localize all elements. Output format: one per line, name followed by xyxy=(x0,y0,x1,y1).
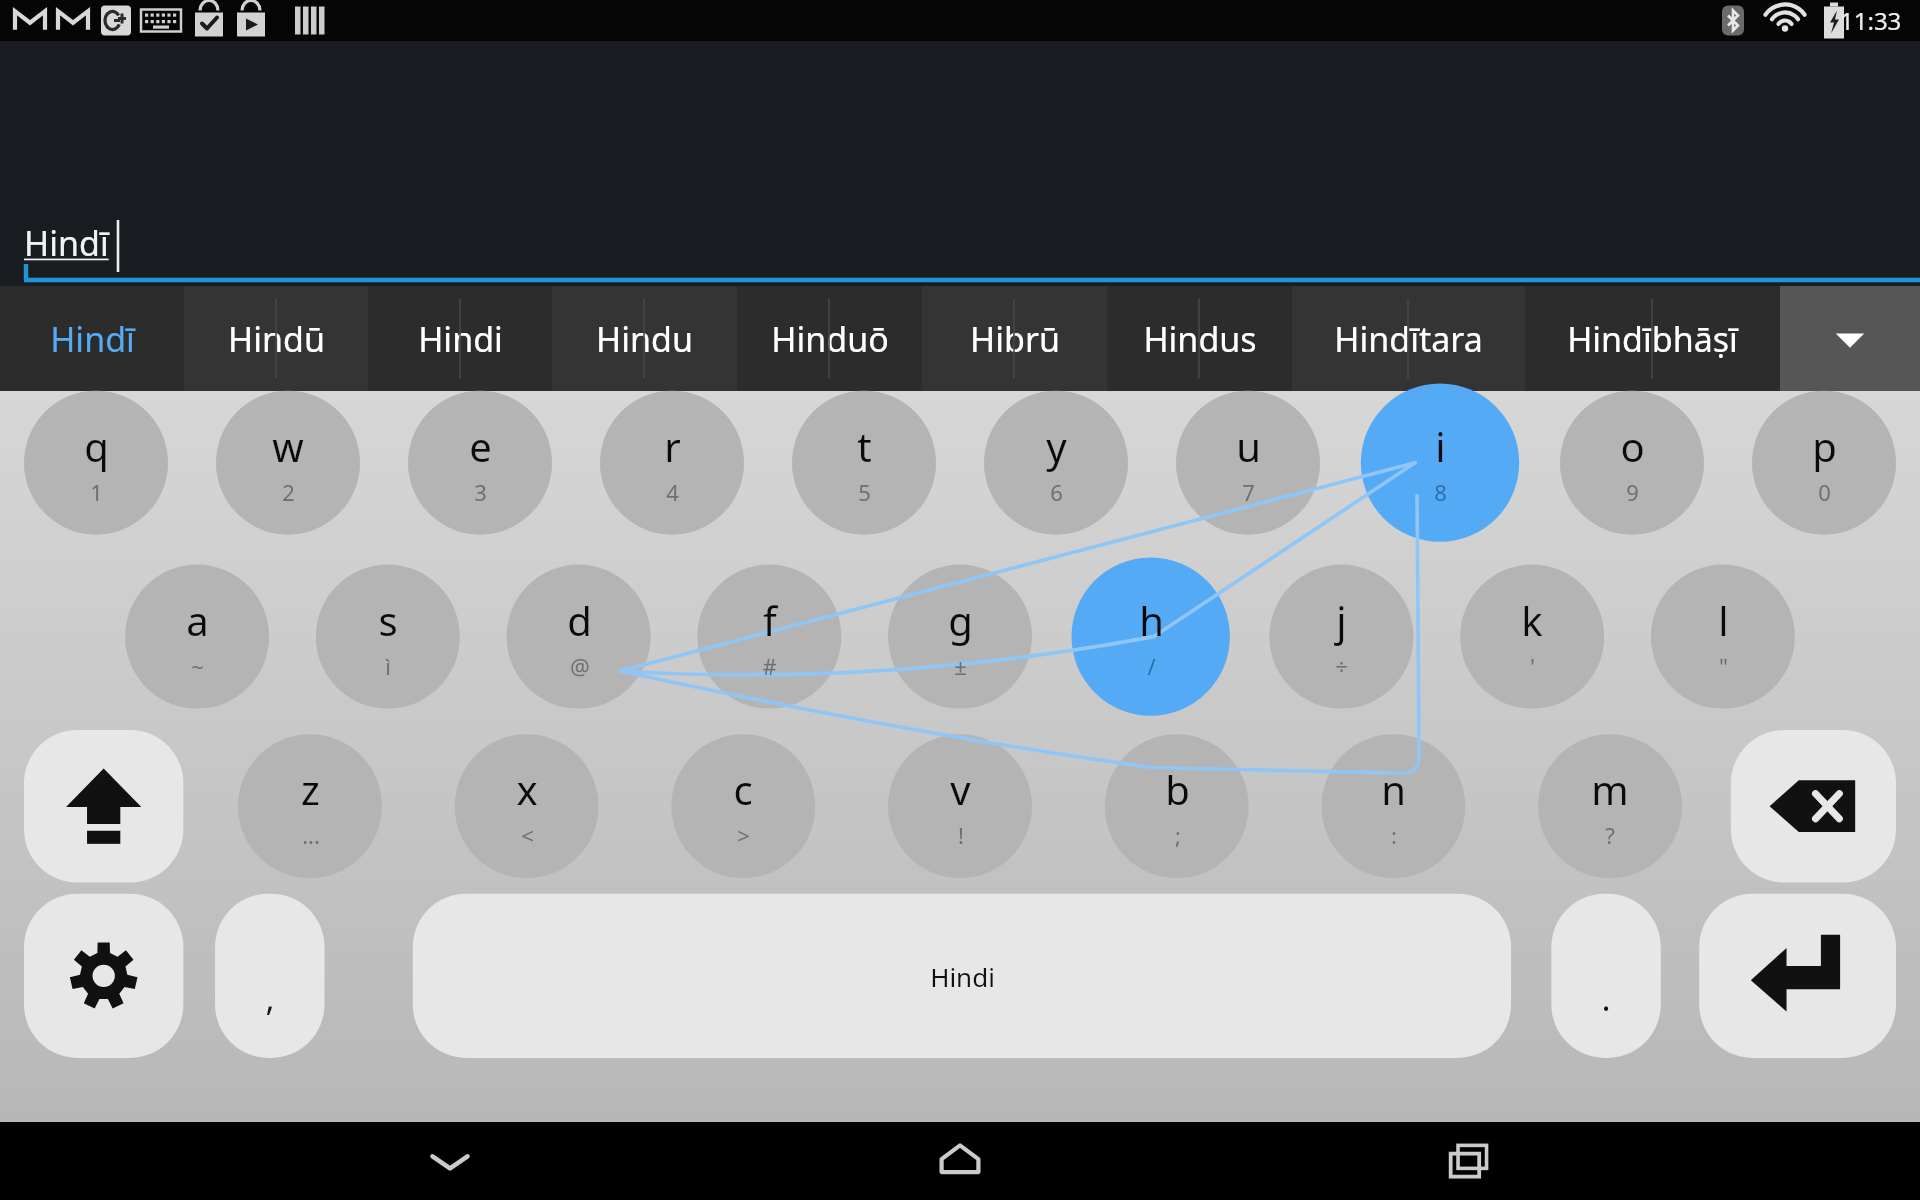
staticText: y xyxy=(1046,419,1067,473)
button[interactable]: Hinduō xyxy=(737,286,922,391)
button[interactable]: Hibrū xyxy=(922,286,1107,391)
staticText: ? xyxy=(1605,820,1615,850)
button[interactable]: g xyxy=(881,564,1038,710)
button[interactable]: c xyxy=(665,733,822,879)
button[interactable]: h xyxy=(1072,564,1229,710)
button[interactable]: n xyxy=(1315,733,1472,879)
button[interactable]: Hindū xyxy=(184,286,368,391)
button[interactable]: Comma xyxy=(215,903,324,1049)
button[interactable]: v xyxy=(881,733,1038,879)
button[interactable]: Hindu xyxy=(552,286,737,391)
button[interactable]: b xyxy=(1098,733,1255,879)
button[interactable]: q xyxy=(17,390,174,536)
staticText: i xyxy=(1435,419,1446,473)
staticText: : xyxy=(1391,820,1397,850)
staticText: " xyxy=(1719,651,1728,681)
staticText: / xyxy=(1147,651,1156,681)
staticText: n xyxy=(1381,762,1406,816)
staticText: ì xyxy=(385,651,391,681)
button[interactable]: p xyxy=(1745,390,1902,536)
button[interactable]: x xyxy=(448,733,605,879)
button[interactable]: Shift xyxy=(24,733,183,879)
staticText: ! xyxy=(958,820,964,850)
button[interactable]: d xyxy=(500,564,657,710)
button[interactable]: t xyxy=(785,390,942,536)
staticText: c xyxy=(733,762,753,816)
staticText: g xyxy=(948,593,973,647)
staticText: w xyxy=(272,419,304,473)
staticText: Hinduō xyxy=(771,316,889,362)
button[interactable]: y xyxy=(977,390,1134,536)
staticText: ~ xyxy=(191,651,204,681)
staticText: m xyxy=(1591,762,1629,816)
staticText: 5 xyxy=(858,477,871,507)
button[interactable]: r xyxy=(593,390,750,536)
staticText: 3 xyxy=(474,477,487,507)
button[interactable]: Hindī xyxy=(0,286,184,391)
button[interactable]: More suggestions xyxy=(1780,286,1920,391)
staticText: h xyxy=(1139,593,1164,647)
button[interactable]: k xyxy=(1453,564,1610,710)
button[interactable]: Hindi xyxy=(368,286,552,391)
button[interactable]: Settings xyxy=(24,903,183,1049)
staticText: 4 xyxy=(666,477,679,507)
staticText: ... xyxy=(302,820,320,850)
staticText: d xyxy=(567,593,592,647)
button[interactable]: Home xyxy=(900,1122,1020,1200)
staticText: f xyxy=(763,593,777,647)
staticText: b xyxy=(1165,762,1190,816)
staticText: Hindī xyxy=(24,220,109,266)
button[interactable]: i xyxy=(1361,390,1518,536)
staticText: Hindītara xyxy=(1334,316,1483,362)
button[interactable]: z xyxy=(231,733,388,879)
button[interactable]: Hindībhāṣī xyxy=(1525,286,1780,391)
staticText: q xyxy=(84,419,109,473)
button[interactable]: Backspace xyxy=(1731,733,1896,879)
staticText: x xyxy=(516,762,538,816)
button[interactable]: u xyxy=(1169,390,1326,536)
staticText: Hindu xyxy=(596,316,693,362)
staticText: ' xyxy=(1530,651,1535,681)
staticText: o xyxy=(1620,419,1645,473)
staticText: p xyxy=(1812,419,1837,473)
staticText: 11:33 xyxy=(1840,4,1902,37)
staticText: # xyxy=(762,651,777,681)
staticText: e xyxy=(469,419,492,473)
staticText: 9 xyxy=(1626,477,1639,507)
staticText: Hindībhāṣī xyxy=(1567,316,1738,362)
button[interactable]: m xyxy=(1531,733,1688,879)
button[interactable]: Hindus xyxy=(1107,286,1292,391)
button[interactable]: j xyxy=(1263,564,1420,710)
button[interactable]: Hide keyboard xyxy=(390,1122,510,1200)
button[interactable]: f xyxy=(691,564,848,710)
staticText: Hindū xyxy=(228,316,325,362)
staticText: < xyxy=(521,820,534,850)
button[interactable]: o xyxy=(1553,390,1710,536)
staticText: ÷ xyxy=(1335,651,1348,681)
button[interactable]: s xyxy=(309,564,466,710)
button[interactable]: w xyxy=(209,390,366,536)
button[interactable]: Recent apps xyxy=(1410,1122,1530,1200)
staticText: s xyxy=(378,593,398,647)
staticText: 7 xyxy=(1242,477,1255,507)
staticText: t xyxy=(857,419,872,473)
staticText: Hindus xyxy=(1143,316,1257,362)
staticText: > xyxy=(737,820,750,850)
staticText: , xyxy=(265,975,275,1021)
staticText: u xyxy=(1236,419,1261,473)
staticText: 6 xyxy=(1050,477,1063,507)
staticText: 1 xyxy=(90,477,103,507)
button[interactable]: l xyxy=(1644,564,1801,710)
button[interactable]: Period xyxy=(1551,903,1660,1049)
button[interactable]: e xyxy=(401,390,558,536)
staticText: z xyxy=(301,762,320,816)
button[interactable]: Hindī xyxy=(24,220,109,266)
button[interactable]: Hindītara xyxy=(1292,286,1525,391)
staticText: l xyxy=(1718,593,1729,647)
staticText: . xyxy=(1601,975,1611,1021)
button[interactable]: Space xyxy=(413,903,1511,1049)
button[interactable]: Enter xyxy=(1699,903,1896,1049)
button[interactable]: a xyxy=(118,564,275,710)
staticText: Hindi xyxy=(930,959,995,994)
staticText: Hindī xyxy=(50,316,135,362)
